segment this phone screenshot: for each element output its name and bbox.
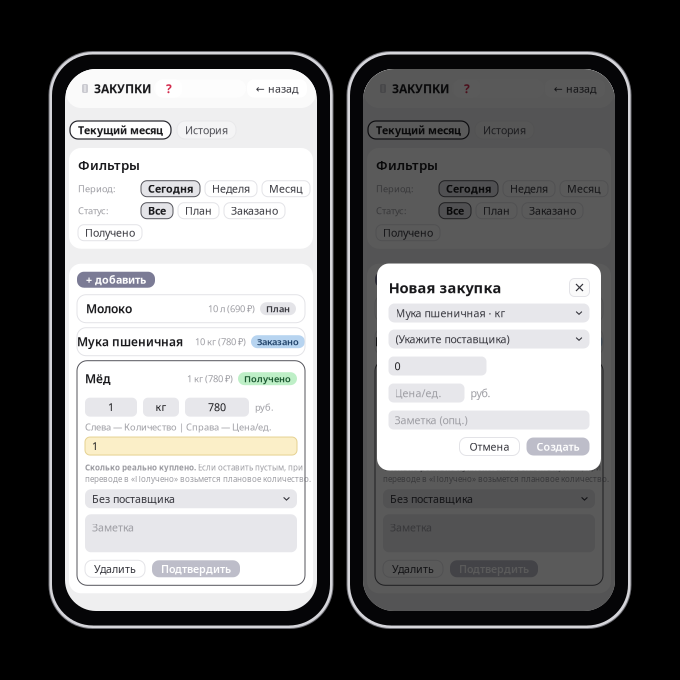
staticText: ? — [166, 80, 172, 96]
button[interactable]: Подтвердить — [450, 560, 538, 577]
staticText: (Укажите поставщика) — [395, 332, 509, 346]
staticText: 1 кг (780 ₽) — [187, 372, 233, 385]
staticText: Сколько реально куплено. Если оставить п… — [85, 462, 303, 473]
staticText: Заметка — [92, 520, 134, 534]
button[interactable]: Получено — [78, 225, 142, 241]
button[interactable]: Месяц — [560, 181, 608, 197]
staticText: Цена/ед. — [394, 386, 441, 400]
staticText: Период: — [78, 182, 116, 195]
staticText: Слева — Количество | Справа — Цена/ед. — [383, 421, 570, 433]
button[interactable]: План — [178, 203, 219, 219]
button[interactable]: Текущий месяц — [368, 121, 469, 139]
staticText: Подтвердить — [459, 562, 529, 576]
button[interactable]: История — [177, 121, 236, 139]
button[interactable]: Неделя — [205, 181, 257, 197]
staticText: Заказано — [555, 335, 597, 348]
button[interactable]: Без поставщика — [383, 489, 595, 508]
button[interactable]: ? — [454, 79, 480, 97]
button[interactable]: ? — [156, 79, 182, 97]
staticText: 10 кг (780 ₽) — [195, 335, 246, 348]
staticText: Фильтры — [376, 156, 438, 174]
staticText: 780 — [208, 400, 226, 414]
staticText: 0 — [394, 359, 400, 373]
button[interactable]: История — [475, 121, 534, 139]
staticText: 780 — [506, 400, 524, 414]
staticText: Заказано — [529, 204, 576, 218]
staticText: Молоко — [86, 301, 132, 317]
button[interactable]: Заказано — [224, 203, 285, 219]
staticText: История — [185, 123, 228, 137]
button[interactable]: Закрыть — [569, 278, 589, 296]
staticText: Создать — [536, 439, 579, 454]
staticText: Получено — [383, 226, 433, 240]
staticText: Мука пшеничная · кг — [395, 306, 505, 320]
staticText: Мука пшеничная — [77, 334, 183, 350]
staticText: Заказано — [231, 204, 278, 218]
button[interactable]: Все — [439, 203, 471, 219]
button[interactable]: Получено — [376, 225, 440, 241]
button[interactable]: Мука пшеничная — [77, 328, 305, 356]
staticText: План — [483, 204, 510, 218]
button[interactable]: Удалить — [85, 560, 145, 577]
button[interactable]: (Укажите поставщика) — [388, 329, 589, 348]
button[interactable]: Подтвердить — [152, 560, 240, 577]
staticText: 1 — [406, 400, 412, 414]
staticText: Мёд — [85, 371, 111, 387]
staticText: Отмена — [469, 439, 509, 454]
staticText: Фильтры — [78, 156, 140, 174]
staticText: ← назад — [256, 81, 298, 96]
staticText: + добавить — [384, 273, 444, 287]
button[interactable]: Текущий месяц — [70, 121, 171, 139]
staticText: 10 л (690 ₽) — [506, 302, 553, 315]
button[interactable]: Месяц — [262, 181, 310, 197]
staticText: Подтвердить — [161, 562, 231, 576]
button[interactable]: План — [476, 203, 517, 219]
button[interactable]: Создать — [526, 437, 589, 455]
button[interactable]: Мука пшеничная · кг — [388, 303, 589, 322]
button[interactable]: Удалить — [383, 560, 443, 577]
button[interactable]: ← назад — [545, 79, 605, 97]
staticText: ЗАКУПКИ — [94, 80, 151, 96]
staticText: Без поставщика — [390, 492, 473, 506]
button[interactable]: Молоко — [375, 295, 603, 323]
button[interactable]: Все — [141, 203, 173, 219]
staticText: История — [483, 123, 526, 137]
staticText: Все — [148, 204, 166, 218]
button[interactable]: Мука пшеничная — [375, 328, 603, 356]
button[interactable]: + добавить — [77, 272, 155, 288]
button[interactable]: Без поставщика — [85, 489, 297, 508]
staticText: Неделя — [212, 182, 250, 196]
button[interactable]: Сегодня — [439, 181, 498, 197]
staticText: кг — [155, 400, 166, 414]
staticText: 1 — [108, 400, 114, 414]
staticText: Получено — [244, 372, 291, 385]
staticText: Период: — [376, 182, 414, 195]
staticText: Слева — Количество | Справа — Цена/ед. — [85, 421, 272, 433]
staticText: Удалить — [392, 562, 434, 576]
button[interactable]: + добавить — [375, 272, 453, 288]
staticText: переводе в «Получено» возьмётся плановое… — [85, 474, 311, 484]
staticText: кг — [453, 400, 464, 414]
staticText: Без поставщика — [92, 492, 175, 506]
button[interactable]: ← назад — [247, 79, 307, 97]
staticText: План — [185, 204, 212, 218]
button[interactable]: Заказано — [522, 203, 583, 219]
staticText: Заметка (опц.) — [394, 413, 467, 427]
staticText: 10 л (690 ₽) — [208, 302, 255, 315]
staticText: ← назад — [554, 81, 596, 96]
staticText: Статус: — [376, 204, 407, 217]
button[interactable]: Неделя — [503, 181, 555, 197]
button[interactable]: Сегодня — [141, 181, 200, 197]
staticText: Молоко — [384, 301, 430, 317]
staticText: Удалить — [94, 562, 136, 576]
staticText: План — [266, 302, 290, 315]
staticText: Неделя — [510, 182, 548, 196]
staticText: ? — [464, 80, 470, 96]
button[interactable]: Молоко — [77, 295, 305, 323]
button[interactable]: Отмена — [459, 437, 519, 455]
staticText: Статус: — [78, 204, 109, 217]
staticText: Месяц — [269, 182, 303, 196]
